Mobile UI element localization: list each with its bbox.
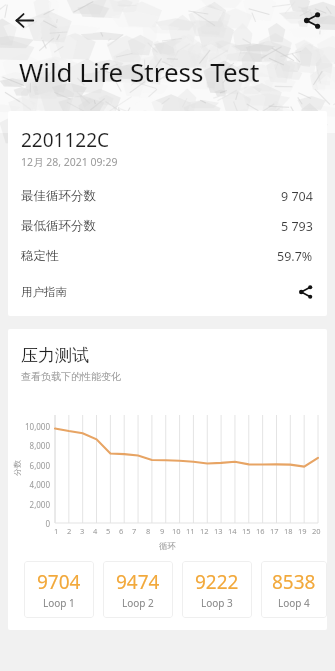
button[interactable]: 9474	[103, 561, 173, 618]
button[interactable]: 8538	[261, 561, 327, 618]
staticText: 8	[146, 526, 151, 536]
staticText: 9	[160, 526, 165, 536]
staticText: 查看负载下的性能变化	[21, 370, 121, 383]
staticText: 19	[298, 526, 307, 536]
staticText: 6,000	[8, 460, 50, 471]
staticText: 9704	[37, 569, 81, 595]
staticText: 循环	[159, 541, 176, 552]
staticText: 2,000	[8, 499, 50, 510]
staticText: 9222	[195, 569, 239, 595]
staticText: 2	[67, 526, 72, 536]
staticText: 4	[93, 526, 98, 536]
button[interactable]: 9222	[182, 561, 252, 618]
staticText: 用户指南	[21, 285, 67, 299]
button[interactable]: 9704	[24, 561, 94, 618]
staticText: 5	[106, 526, 111, 536]
staticText: 4,000	[8, 479, 50, 490]
staticText: Wild Life Stress Test	[19, 54, 260, 89]
staticText: 9474	[116, 569, 160, 595]
staticText: 15	[242, 526, 251, 536]
staticText: 6	[119, 526, 124, 536]
staticText: 10	[172, 526, 181, 536]
staticText: 5 793	[281, 218, 313, 235]
staticText: 8538	[272, 569, 316, 595]
staticText: 11	[186, 526, 195, 536]
staticText: 17	[270, 526, 279, 536]
staticText: Loop 1	[43, 596, 75, 610]
staticText: 59.7%	[277, 248, 313, 265]
staticText: Loop 2	[122, 596, 154, 610]
staticText: 稳定性	[21, 248, 59, 264]
button[interactable]: Share	[295, 3, 329, 37]
staticText: 0	[8, 518, 50, 529]
staticText: Loop 4	[278, 596, 310, 610]
staticText: 20	[312, 526, 321, 536]
staticText: 1	[54, 526, 59, 536]
staticText: 16	[256, 526, 265, 536]
button[interactable]: Back	[7, 3, 41, 37]
staticText: 最佳循环分数	[21, 188, 96, 204]
staticText: 18	[284, 526, 293, 536]
staticText: 2201122C	[21, 127, 110, 153]
staticText: 3	[80, 526, 85, 536]
staticText: 最低循环分数	[21, 218, 96, 234]
staticText: 10,000	[8, 421, 50, 432]
staticText: 8,000	[8, 440, 50, 451]
staticText: Loop 3	[201, 596, 233, 610]
staticText: 7	[132, 526, 137, 536]
staticText: 13	[214, 526, 223, 536]
staticText: 12	[200, 526, 209, 536]
staticText: 9 704	[281, 188, 313, 205]
staticText: 分数	[12, 460, 22, 476]
staticText: 12月 28, 2021 09:29	[21, 155, 118, 169]
staticText: 压力测试	[21, 345, 89, 366]
button[interactable]: 用户指南	[8, 275, 327, 308]
staticText: 14	[228, 526, 237, 536]
